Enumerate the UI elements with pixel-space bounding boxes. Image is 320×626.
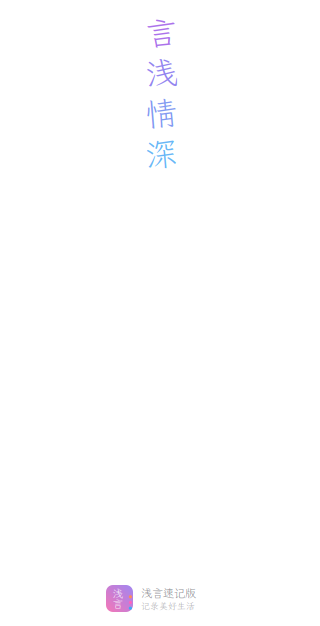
staticText: 浅言速记版	[141, 585, 196, 600]
staticText: 深	[145, 133, 177, 175]
staticText: 情	[145, 92, 177, 134]
staticText: 记录美好生活	[141, 600, 195, 612]
staticText: 浅	[145, 52, 177, 94]
staticText: 言	[145, 11, 177, 53]
button[interactable]: 浅言速记版 · 记录美好生活	[106, 585, 196, 612]
